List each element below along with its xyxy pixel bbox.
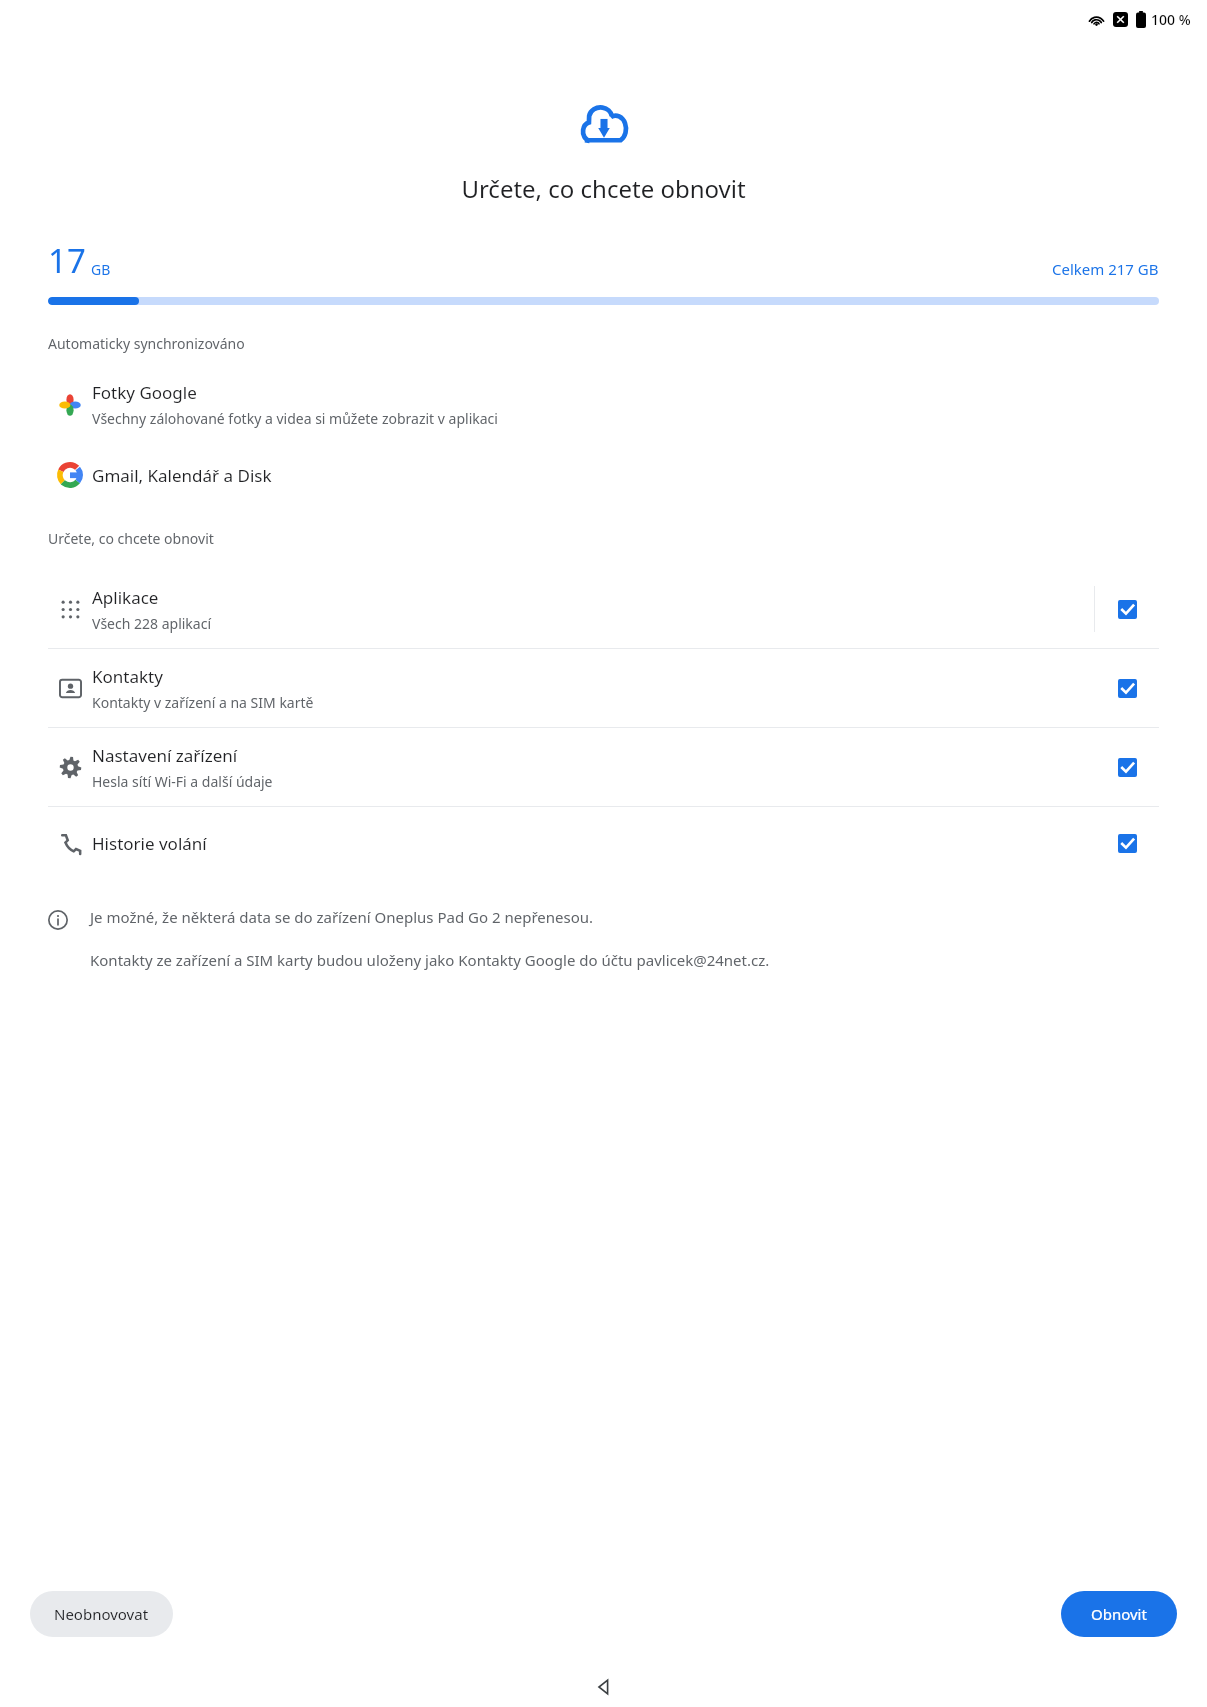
button[interactable]: Aplikace: [0, 570, 1207, 648]
staticText: Všechny zálohované fotky a videa si může…: [92, 409, 498, 428]
staticText: Aplikace: [92, 586, 159, 609]
staticText: Kontakty ze zařízení a SIM karty budou u…: [90, 950, 770, 970]
staticText: Všech 228 aplikací: [92, 614, 212, 633]
button[interactable]: Historie volání: [0, 807, 1207, 879]
staticText: Je možné, že některá data se do zařízení…: [90, 907, 594, 927]
button[interactable]: Fotky Google: [0, 377, 1207, 432]
staticText: Obnovit: [1091, 1604, 1147, 1624]
staticText: Neobnovovat: [54, 1604, 149, 1624]
staticText: Kontakty v zařízení a na SIM kartě: [92, 693, 314, 712]
staticText: GB: [91, 260, 111, 279]
button[interactable]: Nastavení zařízení: [0, 728, 1207, 806]
staticText: Fotky Google: [92, 381, 197, 404]
button[interactable]: Obnovit: [1061, 1591, 1177, 1637]
staticText: Gmail, Kalendář a Disk: [92, 464, 272, 487]
button[interactable]: Kontakty: [0, 649, 1207, 727]
button[interactable]: Neobnovovat: [30, 1591, 173, 1637]
staticText: 100 %: [1151, 10, 1191, 29]
staticText: Automaticky synchronizováno: [48, 334, 245, 353]
staticText: Historie volání: [92, 832, 207, 855]
staticText: Hesla sítí Wi-Fi a další údaje: [92, 772, 273, 791]
staticText: 17: [48, 238, 86, 283]
other: Back: [595, 1678, 613, 1696]
staticText: Celkem 217 GB: [1052, 259, 1159, 279]
staticText: Kontakty: [92, 665, 163, 688]
staticText: Určete, co chcete obnovit: [461, 172, 746, 205]
button[interactable]: Gmail, Kalendář a Disk: [0, 458, 1207, 492]
staticText: Nastavení zařízení: [92, 744, 238, 767]
staticText: Určete, co chcete obnovit: [48, 529, 214, 548]
